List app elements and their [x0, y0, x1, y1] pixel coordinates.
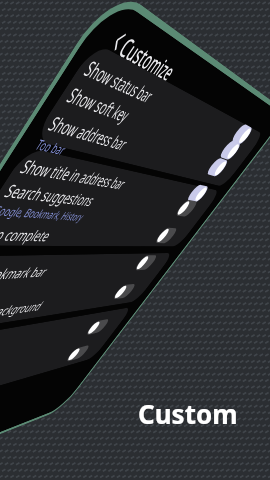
button[interactable]	[12, 146, 221, 204]
button[interactable]	[0, 171, 211, 218]
staticText: Auto complete	[0, 223, 56, 245]
button[interactable]: Toggle	[186, 184, 210, 202]
button[interactable]	[76, 44, 263, 150]
button[interactable]: Toggle	[154, 227, 179, 243]
staticText: Show soft key	[62, 81, 135, 126]
button[interactable]: Back	[97, 16, 141, 65]
button[interactable]	[0, 283, 151, 328]
button[interactable]: Toggle	[111, 284, 137, 300]
staticText: Show address bar	[44, 110, 133, 154]
button[interactable]	[59, 72, 252, 164]
button[interactable]: Toggle	[65, 345, 91, 362]
staticText: Show bookmark bar	[0, 263, 52, 287]
button[interactable]: Toggle	[85, 319, 111, 336]
button[interactable]: Toggle	[174, 200, 199, 217]
button[interactable]: Toggle	[133, 255, 159, 270]
staticText: Search suggestions	[0, 178, 100, 210]
button[interactable]: Toggle	[218, 139, 242, 160]
staticText: Top bar	[32, 134, 71, 158]
button[interactable]	[0, 217, 191, 243]
button[interactable]	[0, 256, 171, 284]
staticText: Open links in background	[0, 297, 47, 331]
button[interactable]: Toggle	[205, 157, 229, 177]
staticText: Show status bar	[79, 54, 159, 107]
staticText: Customize	[112, 29, 182, 88]
staticText: Custom	[138, 396, 238, 431]
button[interactable]: Toggle	[230, 123, 254, 145]
button[interactable]	[40, 101, 240, 180]
button[interactable]	[0, 341, 107, 423]
button[interactable]	[0, 316, 126, 383]
staticText: Show title in address bar	[16, 154, 131, 193]
staticText: Google, Bookmark, History	[0, 201, 88, 224]
